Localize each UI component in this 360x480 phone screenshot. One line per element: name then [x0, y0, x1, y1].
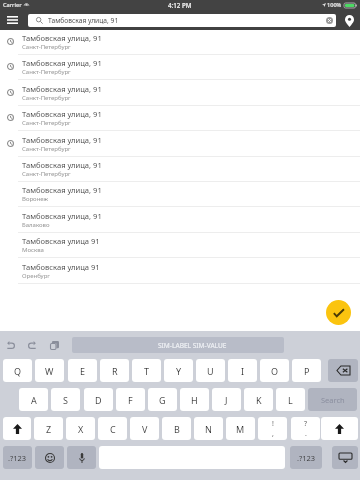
button[interactable]: W: [35, 359, 64, 382]
staticText: .?123: [297, 453, 316, 463]
staticText: X: [78, 423, 84, 435]
staticText: Тамбовская улица, 91: [22, 58, 102, 68]
button[interactable]: Confirm: [326, 300, 351, 325]
button[interactable]: U: [196, 359, 225, 382]
staticText: A: [31, 394, 37, 406]
button[interactable]: Тамбовская улица 91: [0, 259, 360, 284]
staticText: .: [305, 429, 307, 439]
staticText: E: [80, 365, 86, 377]
button[interactable]: G: [148, 388, 177, 411]
button[interactable]: K: [244, 388, 273, 411]
staticText: .?123: [8, 453, 27, 463]
button[interactable]: F: [116, 388, 145, 411]
button[interactable]: Undo: [0, 331, 21, 359]
button[interactable]: Clear: [326, 17, 333, 24]
button[interactable]: Тамбовская улица, 91: [0, 208, 360, 233]
button[interactable]: Backspace: [328, 359, 358, 382]
staticText: Тамбовская улица, 91: [22, 211, 102, 221]
staticText: !: [272, 419, 274, 429]
staticText: Тамбовская улица, 91: [22, 33, 102, 43]
button[interactable]: Location: [338, 11, 360, 30]
button[interactable]: R: [100, 359, 129, 382]
button[interactable]: S: [51, 388, 80, 411]
staticText: U: [207, 365, 214, 377]
button[interactable]: O: [260, 359, 289, 382]
staticText: Тамбовская улица, 91: [22, 135, 102, 145]
staticText: K: [256, 394, 262, 406]
button[interactable]: B: [162, 417, 191, 440]
staticText: Санкт-Петербург: [22, 145, 71, 153]
staticText: Оренбург: [22, 272, 50, 280]
staticText: ?: [304, 419, 308, 429]
button[interactable]: Тамбовская улица, 91: [0, 106, 360, 131]
button[interactable]: Y: [164, 359, 193, 382]
staticText: Москва: [22, 246, 44, 254]
button[interactable]: C: [98, 417, 127, 440]
staticText: O: [271, 365, 279, 377]
staticText: Балаково: [22, 221, 50, 229]
button[interactable]: Тамбовская улица, 91: [0, 81, 360, 106]
button[interactable]: Z: [34, 417, 63, 440]
button[interactable]: Hide keyboard: [332, 446, 358, 469]
button[interactable]: Тамбовская улица, 91: [0, 132, 360, 157]
button[interactable]: Redo: [21, 331, 43, 359]
button[interactable]: Copy: [43, 331, 66, 359]
button[interactable]: M: [226, 417, 255, 440]
button[interactable]: Shift: [3, 417, 31, 440]
button[interactable]: Тамбовская улица, 91: [28, 14, 336, 27]
button[interactable]: A: [19, 388, 48, 411]
button[interactable]: Search: [308, 388, 357, 411]
staticText: Тамбовская улица, 91: [22, 185, 102, 195]
button[interactable]: Тамбовская улица 91: [0, 233, 360, 258]
button[interactable]: I: [228, 359, 257, 382]
button[interactable]: V: [130, 417, 159, 440]
staticText: B: [174, 423, 180, 435]
button[interactable]: E: [68, 359, 97, 382]
staticText: W: [45, 365, 54, 377]
staticText: C: [110, 423, 116, 435]
button[interactable]: Voice input: [67, 446, 96, 469]
button[interactable]: N: [194, 417, 223, 440]
staticText: R: [112, 365, 118, 377]
staticText: Санкт-Петербург: [22, 68, 71, 76]
staticText: Санкт-Петербург: [22, 119, 71, 127]
staticText: F: [128, 394, 133, 406]
button[interactable]: .?123: [3, 446, 32, 469]
button[interactable]: Тамбовская улица, 91: [0, 55, 360, 80]
staticText: Тамбовская улица, 91: [22, 109, 102, 119]
staticText: L: [288, 394, 293, 406]
button[interactable]: D: [84, 388, 113, 411]
button[interactable]: P: [292, 359, 321, 382]
button[interactable]: J: [212, 388, 241, 411]
button[interactable]: Тамбовская улица, 91: [0, 30, 360, 55]
staticText: Search: [321, 395, 345, 405]
staticText: Q: [14, 365, 22, 377]
staticText: S: [63, 394, 68, 406]
button[interactable]: Тамбовская улица, 91: [0, 182, 360, 207]
staticText: Z: [46, 423, 52, 435]
staticText: ,: [272, 429, 274, 439]
button[interactable]: Shift: [321, 417, 358, 440]
staticText: H: [191, 394, 198, 406]
staticText: Тамбовская улица 91: [22, 236, 100, 246]
staticText: Тамбовская улица, 91: [22, 84, 102, 94]
staticText: I: [241, 365, 245, 377]
button[interactable]: SIM-LABEL SIM-VALUE: [72, 337, 284, 353]
button[interactable]: .?123: [290, 446, 322, 469]
staticText: Тамбовская улица, 91: [22, 160, 102, 170]
button[interactable]: Menu: [0, 10, 24, 29]
button[interactable]: Emoji: [35, 446, 64, 469]
button[interactable]: L: [276, 388, 305, 411]
button[interactable]: T: [132, 359, 161, 382]
staticText: 4:12 PM: [168, 1, 192, 9]
button[interactable]: excl: [258, 417, 287, 440]
button[interactable]: Q: [3, 359, 32, 382]
staticText: Y: [176, 365, 182, 377]
button[interactable]: H: [180, 388, 209, 411]
staticText: T: [144, 365, 150, 377]
staticText: D: [95, 394, 102, 406]
button[interactable]: Тамбовская улица, 91: [0, 157, 360, 182]
button[interactable]: X: [66, 417, 95, 440]
button[interactable]: ques: [291, 417, 320, 440]
